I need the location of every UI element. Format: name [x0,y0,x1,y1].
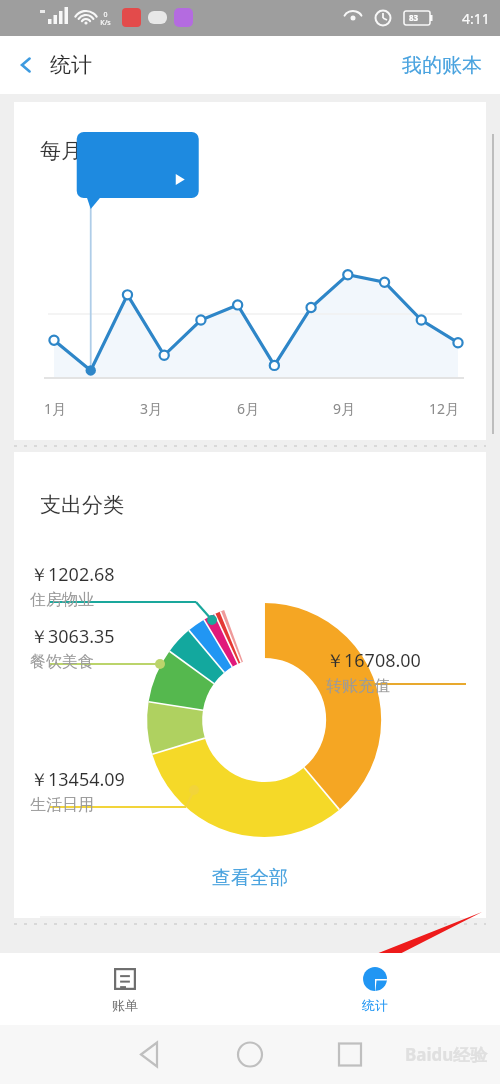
staticText: ￥16708.00 [326,648,421,673]
staticText: ￥13454.09 [30,767,125,792]
button[interactable]: 统计 [250,953,500,1025]
staticText: 每月支出 [40,138,124,164]
other: Back [16,55,36,75]
staticText: 我的账本 [402,53,482,78]
staticText: ￥1202.68 [30,562,115,587]
staticText: 1月 [44,399,67,418]
staticText: 0 K/s [100,10,111,27]
staticText: Baidu经验 [405,1043,488,1066]
button[interactable]: Back [0,46,104,84]
button[interactable]: 账单 [0,953,250,1025]
staticText: 住房物业 [30,590,94,610]
staticText: 83 [409,12,419,23]
button[interactable]: 查看全部 [172,852,328,918]
staticText: 3月 [140,399,163,418]
staticText: 餐饮美食 [30,652,94,672]
staticText: 支出分类 [40,492,124,518]
staticText: 统计 [50,52,92,78]
button[interactable]: 我的账本 [384,45,500,86]
staticText: 9月 [333,399,356,418]
staticText: 4:11 [462,9,490,28]
staticText: 查看全部 [212,866,288,890]
staticText: 转账充值 [326,676,390,696]
staticText: 生活日用 [30,795,94,815]
staticText: 12月 [429,399,460,418]
staticText: ￥3063.35 [30,624,115,649]
staticText: 6月 [237,399,260,418]
staticText: 统计 [362,997,388,1013]
staticText: 账单 [112,997,138,1013]
